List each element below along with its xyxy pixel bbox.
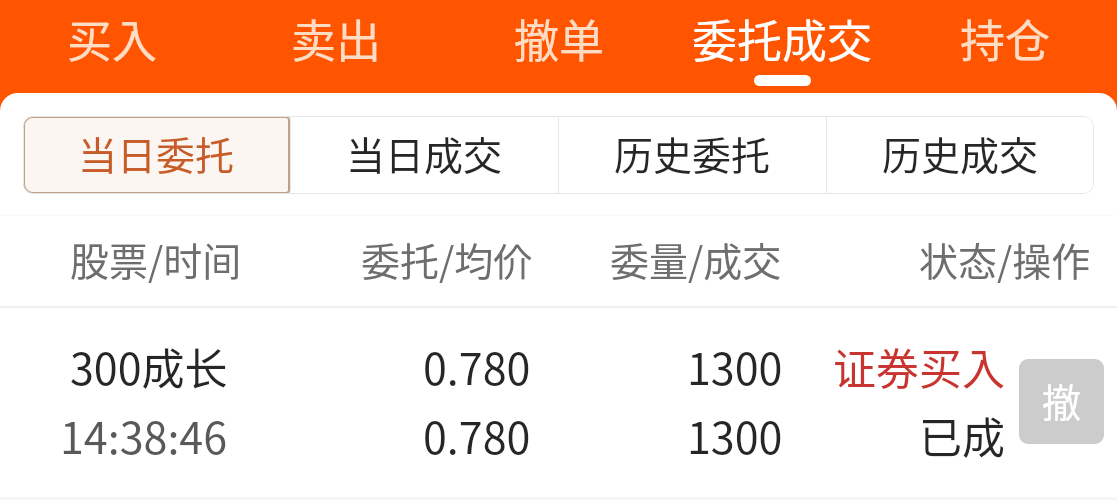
staticText: 1300 <box>687 404 783 466</box>
staticText: 当日委托 <box>78 125 235 181</box>
button[interactable]: 当日成交 <box>291 116 558 194</box>
staticText: 0.780 <box>423 404 531 466</box>
button[interactable]: 持仓 <box>894 0 1117 93</box>
staticText: 当日成交 <box>346 125 503 181</box>
button[interactable]: 300成长 <box>0 308 1117 497</box>
staticText: 历史委托 <box>614 125 771 181</box>
staticText: 300成长 <box>70 335 228 397</box>
staticText: 买入 <box>67 6 158 66</box>
button[interactable]: 当日委托 <box>23 116 290 194</box>
staticText: 证券买入 <box>833 335 1005 397</box>
staticText: 撤 <box>1042 372 1082 428</box>
staticText: 14:38:46 <box>60 404 228 466</box>
button[interactable]: 撤单 <box>448 0 671 93</box>
staticText: 委量/成交 <box>610 231 782 287</box>
staticText: 已成 <box>919 404 1005 466</box>
button[interactable]: 撤单 <box>1019 359 1104 444</box>
staticText: 持仓 <box>960 6 1051 66</box>
button[interactable]: 买入 <box>0 0 224 93</box>
button[interactable]: 历史委托 <box>559 116 826 194</box>
staticText: 股票/时间 <box>70 231 242 287</box>
staticText: 卖出 <box>291 6 382 66</box>
staticText: 委托成交 <box>692 6 873 66</box>
staticText: 历史成交 <box>882 125 1039 181</box>
staticText: 0.780 <box>423 335 531 397</box>
staticText: 状态/操作 <box>919 231 1091 287</box>
button[interactable]: 历史成交 <box>827 116 1094 194</box>
staticText: 委托/均价 <box>361 231 533 287</box>
button[interactable]: 卖出 <box>224 0 448 93</box>
staticText: 1300 <box>687 335 783 397</box>
staticText: 撤单 <box>514 6 605 66</box>
button[interactable]: 委托成交 <box>671 0 894 93</box>
